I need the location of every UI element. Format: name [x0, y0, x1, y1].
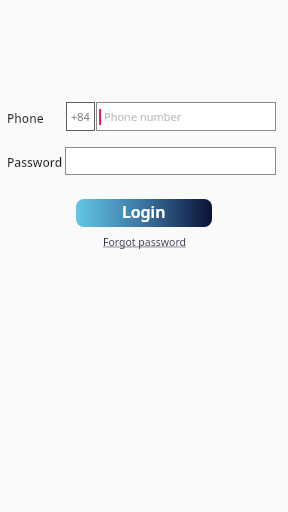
staticText: Login	[122, 201, 166, 223]
button[interactable]: Phone number	[96, 102, 276, 131]
staticText: Phone number	[104, 109, 182, 124]
button[interactable]: Forgot password	[103, 235, 186, 249]
button[interactable]	[65, 147, 276, 175]
button[interactable]: Login	[76, 199, 212, 227]
staticText: +84	[71, 109, 90, 124]
staticText: Phone	[7, 110, 44, 126]
staticText: Forgot password	[103, 235, 186, 249]
button[interactable]: +84	[66, 102, 95, 131]
staticText: Password	[7, 154, 63, 170]
